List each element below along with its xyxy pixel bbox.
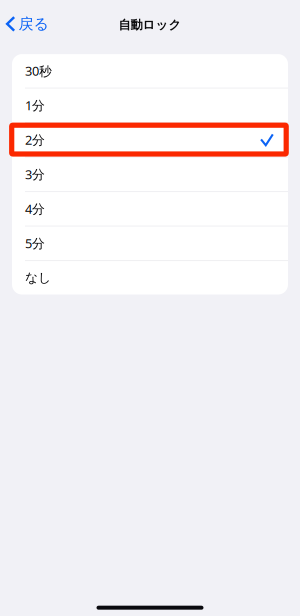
staticText: 2分 [25, 131, 45, 148]
button[interactable]: 2分 [12, 123, 288, 157]
button[interactable]: 4分 [12, 192, 288, 226]
staticText: なし [25, 270, 51, 286]
staticText: 5分 [25, 235, 45, 252]
staticText: 3分 [25, 166, 45, 183]
button[interactable]: なし [12, 261, 288, 294]
staticText: 1分 [25, 97, 45, 114]
button[interactable]: 3分 [12, 158, 288, 191]
staticText: 戻る [18, 14, 48, 33]
button[interactable]: 5分 [12, 227, 288, 260]
button[interactable]: 30秒 [12, 54, 288, 88]
button[interactable]: 1分 [12, 89, 288, 122]
button[interactable]: 戻る [0, 12, 54, 36]
staticText: 30秒 [25, 62, 52, 79]
staticText: 自動ロック [118, 17, 181, 33]
staticText: 4分 [25, 200, 45, 217]
